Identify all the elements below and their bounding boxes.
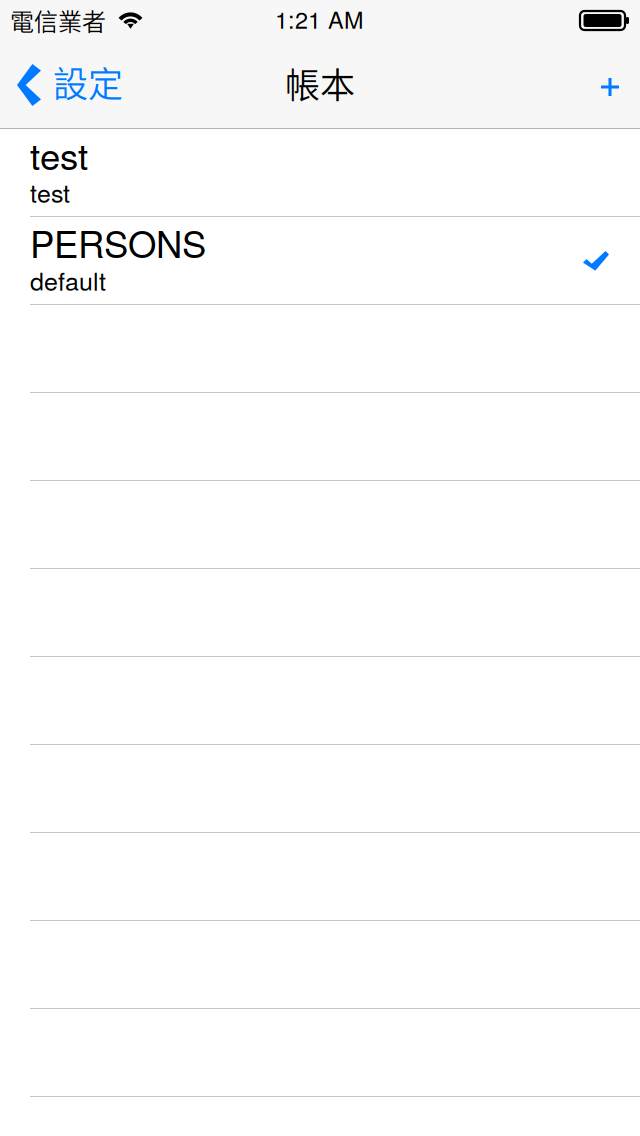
staticText: 電信業者 [10,3,106,38]
staticText: default [30,262,106,298]
staticText: 1:21 AM [275,2,363,35]
button[interactable]: 設定 [11,42,133,128]
button[interactable]: PERSONS [0,217,640,305]
staticText: 設定 [53,57,123,107]
staticText: test [30,128,88,180]
staticText: 帳本 [285,58,355,108]
staticText: test [30,174,70,210]
button[interactable]: test [0,129,640,217]
staticText: PERSONS [30,216,206,268]
button[interactable]: Add [578,48,640,126]
